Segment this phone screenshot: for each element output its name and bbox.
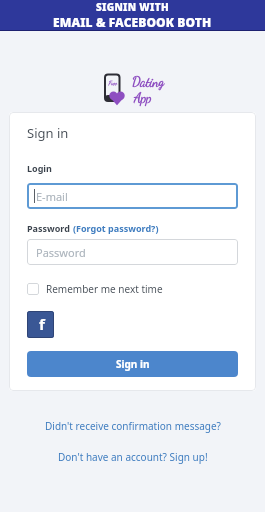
button[interactable]: Sign in — [27, 351, 238, 377]
staticText: Sign in — [27, 124, 69, 142]
staticText: Login — [27, 162, 52, 174]
staticText: Dating — [132, 74, 164, 90]
staticText: f — [39, 314, 45, 334]
staticText: Sign in — [116, 357, 150, 371]
staticText: E-mail — [36, 189, 68, 204]
staticText: EMAIL & FACEBOOK BOTH — [53, 14, 212, 30]
button[interactable]: f — [27, 311, 54, 338]
staticText: SIGNIN WITH — [96, 0, 169, 14]
button[interactable]: Didn't receive confirmation message? — [45, 419, 221, 433]
button[interactable]: E-mail — [27, 183, 238, 209]
staticText: App — [134, 90, 152, 106]
button[interactable]: Password — [27, 239, 238, 265]
button[interactable]: (Forgot password?) — [73, 222, 159, 234]
button[interactable]: Remember me next time — [27, 282, 163, 296]
staticText: Free — [108, 79, 117, 86]
staticText: Password — [36, 245, 86, 260]
staticText: Remember me next time — [46, 282, 163, 296]
staticText: Password — [27, 222, 73, 234]
button[interactable]: Don't have an account? Sign up! — [58, 450, 208, 464]
